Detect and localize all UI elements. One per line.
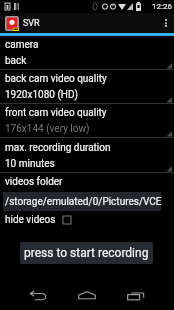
button[interactable]: More options (158, 13, 174, 33)
staticText: max. recording duration (5, 142, 111, 154)
staticText: back cam video quality (5, 73, 107, 85)
button[interactable]: Home (65, 280, 109, 310)
staticText: 12:26 (152, 2, 172, 11)
staticText: back (5, 55, 27, 67)
button[interactable]: press to start recording (20, 242, 153, 264)
button[interactable]: back cam video quality (0, 70, 174, 104)
staticText: /storage/emulated/0/Pictures/VCE (5, 196, 162, 208)
staticText: 1920x1080 (HD) (5, 89, 79, 101)
button[interactable]: videos folder (0, 173, 174, 211)
button[interactable]: Recent apps (113, 280, 157, 310)
staticText: press to start recording (24, 246, 149, 260)
staticText: videos folder (5, 176, 63, 188)
staticText: front cam video quality (5, 107, 107, 119)
button[interactable]: front cam video quality (0, 104, 174, 138)
button[interactable]: max. recording duration (0, 139, 174, 173)
staticText: SVR (23, 18, 40, 29)
button[interactable]: hide videos (0, 212, 174, 228)
staticText: camera (5, 39, 39, 51)
button[interactable]: Back (16, 280, 60, 310)
staticText: 176x144 (very low) (5, 123, 90, 135)
button[interactable]: camera (0, 36, 174, 70)
staticText: hide videos (5, 214, 56, 226)
staticText: 10 minutes (5, 158, 55, 170)
